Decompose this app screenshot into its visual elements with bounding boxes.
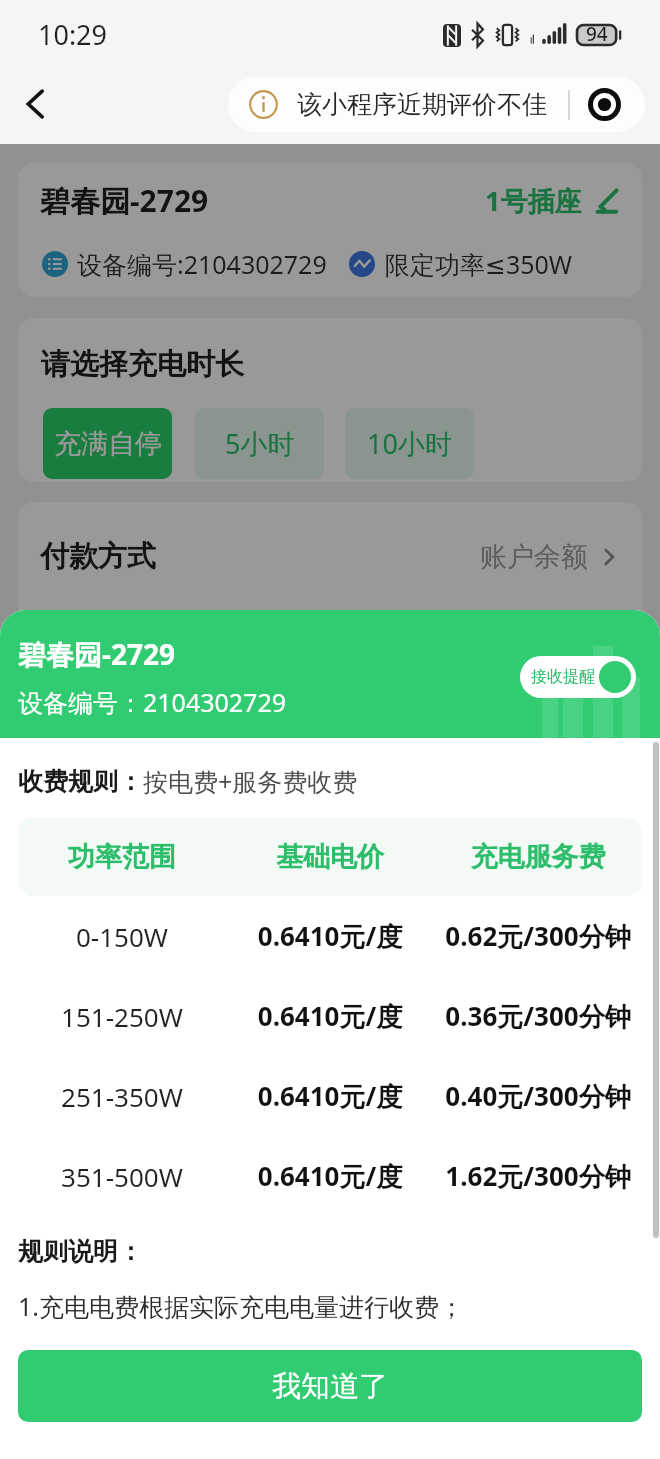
staticText: 充电服务费: [434, 840, 642, 874]
staticText: 该小程序近期评价不佳: [297, 89, 547, 120]
staticText: 5小时: [225, 425, 295, 462]
staticText: 94: [586, 21, 608, 47]
staticText: 0.40元/300分钟: [434, 1078, 642, 1114]
button[interactable]: 接收提醒: [520, 656, 636, 698]
staticText: 设备编号：2104302729: [18, 685, 287, 719]
staticText: 账户余额: [480, 540, 588, 574]
staticText: 接收提醒: [531, 667, 595, 687]
staticText: 1.充电电费根据实际充电电量进行收费；: [18, 1289, 465, 1323]
button[interactable]: 充满自停: [43, 408, 172, 479]
staticText: 151-250W: [18, 999, 226, 1034]
staticText: 0.36元/300分钟: [434, 998, 642, 1034]
staticText: 10小时: [367, 425, 452, 462]
staticText: 0.6410元/度: [226, 1078, 434, 1114]
staticText: 基础电价: [226, 840, 434, 874]
staticText: 0.6410元/度: [226, 998, 434, 1034]
staticText: 1号插座: [485, 182, 582, 219]
staticText: 351-500W: [18, 1159, 226, 1194]
staticText: 0.6410元/度: [226, 918, 434, 954]
button[interactable]: 10小时: [345, 408, 474, 479]
staticText: 碧春园-2729: [18, 635, 176, 673]
button[interactable]: 我知道了: [18, 1350, 642, 1422]
staticText: 251-350W: [18, 1079, 226, 1114]
staticText: 设备编号:2104302729: [77, 247, 327, 281]
staticText: 0.62元/300分钟: [434, 918, 642, 954]
staticText: 限定功率≤350W: [385, 247, 573, 281]
staticText: 碧春园-2729: [40, 180, 209, 221]
staticText: 付款方式: [40, 538, 156, 575]
staticText: 功率范围: [18, 840, 226, 874]
other: More: [588, 88, 621, 121]
staticText: 按电费+服务费收费: [143, 764, 358, 798]
staticText: 请选择充电时长: [41, 346, 244, 383]
staticText: 0-150W: [18, 919, 226, 954]
staticText: 0.6410元/度: [226, 1158, 434, 1194]
button[interactable]: 该小程序近期评价不佳: [228, 77, 645, 132]
staticText: 我知道了: [272, 1368, 388, 1405]
staticText: 10:29: [38, 16, 108, 53]
staticText: 充满自停: [54, 427, 162, 461]
staticText: 收费规则：: [18, 766, 143, 797]
button[interactable]: Back: [9, 78, 61, 130]
staticText: 1.62元/300分钟: [434, 1158, 642, 1194]
button[interactable]: 5小时: [195, 408, 324, 479]
staticText: 规则说明：: [18, 1236, 143, 1267]
